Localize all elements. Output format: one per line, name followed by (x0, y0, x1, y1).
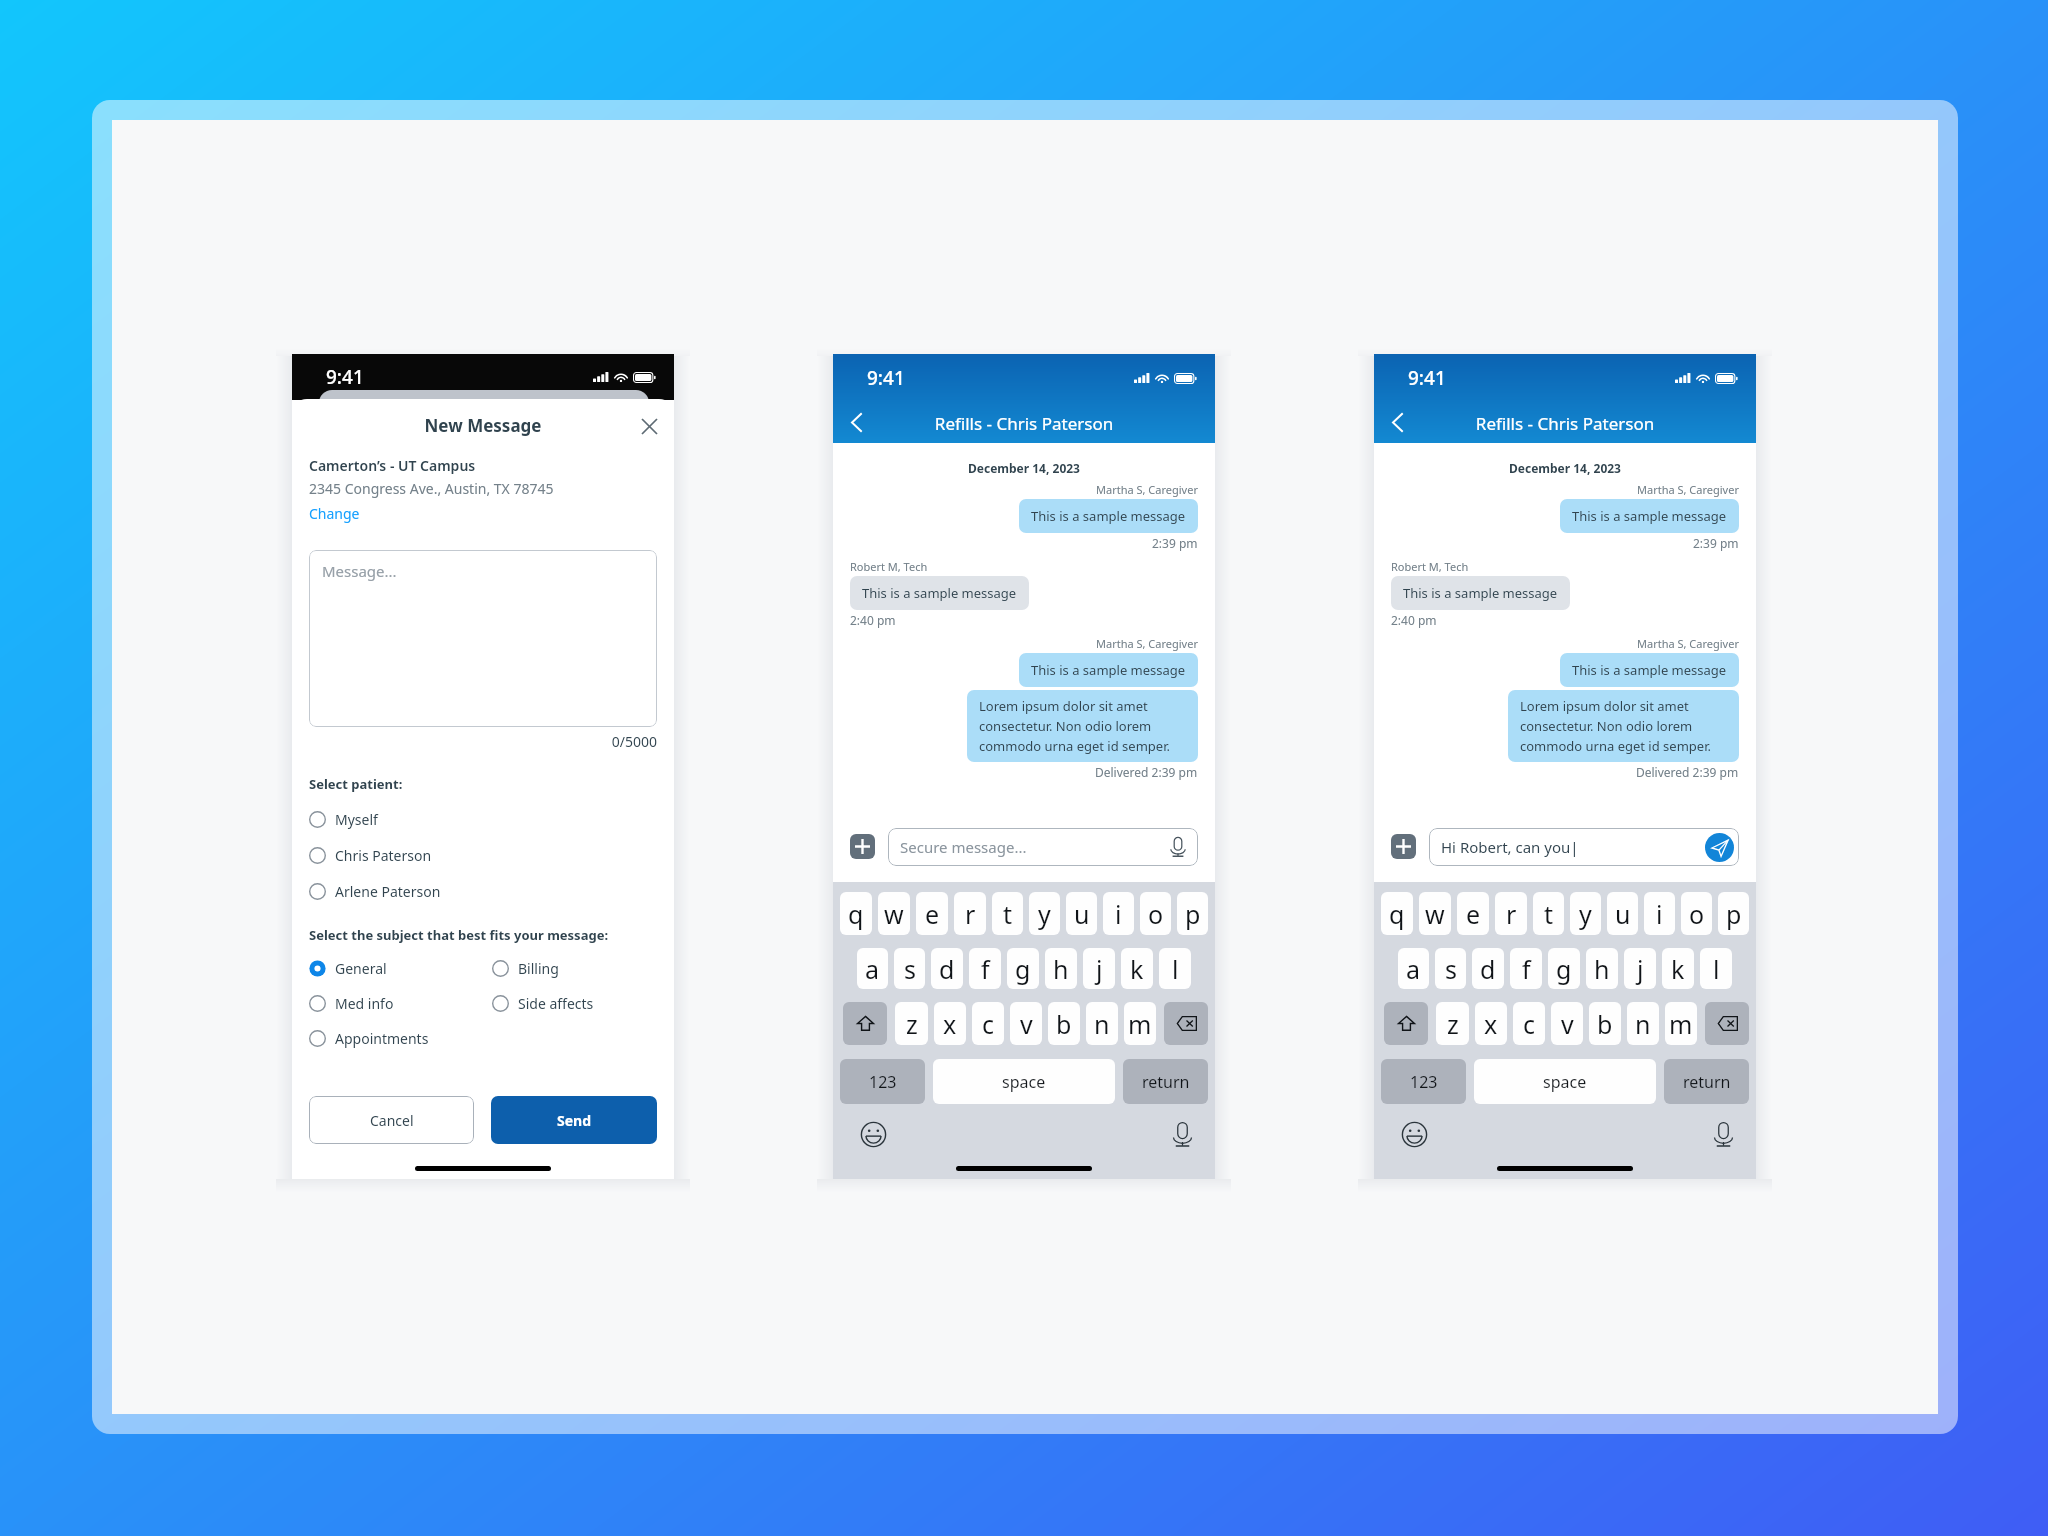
button[interactable]: d (1472, 948, 1504, 989)
button[interactable]: n (1627, 1002, 1659, 1045)
staticText: Select patient: (309, 775, 403, 793)
button[interactable]: r (1495, 892, 1527, 935)
button[interactable]: return (1123, 1059, 1208, 1104)
button[interactable]: p (1718, 892, 1749, 935)
staticText: y (1038, 897, 1051, 931)
staticText: Martha S, Caregiver (1096, 482, 1198, 497)
button[interactable]: n (1086, 1002, 1118, 1045)
button[interactable]: d (931, 948, 963, 989)
button[interactable]: u (1607, 892, 1638, 935)
button[interactable]: Close (634, 411, 664, 441)
button[interactable]: Hi Robert, can you| (1429, 828, 1739, 866)
button[interactable]: j (1083, 948, 1115, 989)
button[interactable]: q (1381, 892, 1413, 935)
button[interactable]: Billing (492, 952, 559, 984)
button[interactable]: w (878, 892, 910, 935)
button[interactable]: b (1048, 1002, 1080, 1045)
button[interactable]: Shift (843, 1002, 887, 1045)
button[interactable]: l (1700, 948, 1732, 989)
button[interactable]: Back (841, 407, 871, 437)
button[interactable]: a (1398, 948, 1429, 989)
button[interactable]: x (934, 1002, 966, 1045)
staticText: s (904, 952, 916, 986)
button[interactable]: Emoji (1400, 1120, 1428, 1148)
button[interactable]: Chris Paterson (309, 839, 432, 871)
button[interactable]: Shift (1384, 1002, 1428, 1045)
button[interactable]: e (1457, 892, 1489, 935)
staticText: r (965, 897, 976, 931)
button[interactable]: b (1589, 1002, 1621, 1045)
button[interactable]: Appointments (309, 1022, 429, 1054)
button[interactable]: Send (491, 1096, 657, 1144)
button[interactable]: Med info (309, 987, 394, 1019)
button[interactable]: z (895, 1002, 928, 1045)
staticText: This is a sample message (1572, 507, 1727, 525)
button[interactable]: x (1475, 1002, 1507, 1045)
button[interactable]: space (1474, 1059, 1656, 1104)
button[interactable]: Emoji (859, 1120, 887, 1148)
button[interactable]: Arlene Paterson (309, 875, 441, 907)
button[interactable]: p (1177, 892, 1208, 935)
button[interactable]: Dictation (1709, 1120, 1737, 1148)
button[interactable]: i (1644, 892, 1675, 935)
button[interactable]: c (1513, 1002, 1545, 1045)
button[interactable]: Back (1382, 407, 1412, 437)
button[interactable]: Attach (850, 834, 875, 859)
button[interactable]: f (1510, 948, 1542, 989)
button[interactable]: o (1140, 892, 1171, 935)
button[interactable]: Message... (309, 550, 657, 727)
button[interactable]: space (933, 1059, 1115, 1104)
button[interactable]: g (1007, 948, 1039, 989)
button[interactable]: General (309, 952, 387, 984)
button[interactable]: y (1029, 892, 1060, 935)
button[interactable]: z (1436, 1002, 1469, 1045)
staticText: 123 (869, 1071, 897, 1093)
staticText: 2345 Congress Ave., Austin, TX 78745 (309, 479, 554, 498)
button[interactable]: k (1121, 948, 1153, 989)
button[interactable]: Attach (1391, 834, 1416, 859)
button[interactable]: q (840, 892, 872, 935)
button[interactable]: t (992, 892, 1023, 935)
button[interactable]: v (1010, 1002, 1042, 1045)
button[interactable]: l (1159, 948, 1191, 989)
staticText: z (906, 1007, 918, 1041)
button[interactable]: k (1662, 948, 1694, 989)
button[interactable]: Voice input (1167, 836, 1189, 858)
button[interactable]: m (1665, 1002, 1697, 1045)
button[interactable]: v (1551, 1002, 1583, 1045)
button[interactable]: i (1103, 892, 1134, 935)
button[interactable]: g (1548, 948, 1580, 989)
staticText: l (1713, 952, 1720, 986)
button[interactable]: s (1435, 948, 1466, 989)
button[interactable]: Secure message... (888, 828, 1198, 866)
button[interactable]: 123 (1381, 1059, 1466, 1104)
button[interactable]: y (1570, 892, 1601, 935)
button[interactable]: h (1045, 948, 1077, 989)
button[interactable]: Cancel (309, 1096, 474, 1144)
staticText: e (925, 897, 940, 931)
button[interactable]: s (894, 948, 925, 989)
button[interactable]: c (972, 1002, 1004, 1045)
staticText: x (943, 1007, 957, 1041)
button[interactable]: e (916, 892, 948, 935)
staticText: Billing (518, 959, 559, 978)
button[interactable]: Send (1705, 833, 1734, 862)
button[interactable]: Backspace (1705, 1002, 1749, 1045)
button[interactable]: h (1586, 948, 1618, 989)
button[interactable]: Backspace (1164, 1002, 1208, 1045)
button[interactable]: Myself (309, 803, 378, 835)
button[interactable]: Change (308, 502, 361, 525)
button[interactable]: return (1664, 1059, 1749, 1104)
button[interactable]: u (1066, 892, 1097, 935)
button[interactable]: j (1624, 948, 1656, 989)
button[interactable]: w (1419, 892, 1451, 935)
button[interactable]: r (954, 892, 986, 935)
button[interactable]: a (857, 948, 888, 989)
button[interactable]: m (1124, 1002, 1156, 1045)
button[interactable]: Side affects (492, 987, 594, 1019)
button[interactable]: Dictation (1168, 1120, 1196, 1148)
button[interactable]: 123 (840, 1059, 925, 1104)
button[interactable]: t (1533, 892, 1564, 935)
button[interactable]: o (1681, 892, 1712, 935)
button[interactable]: f (969, 948, 1001, 989)
